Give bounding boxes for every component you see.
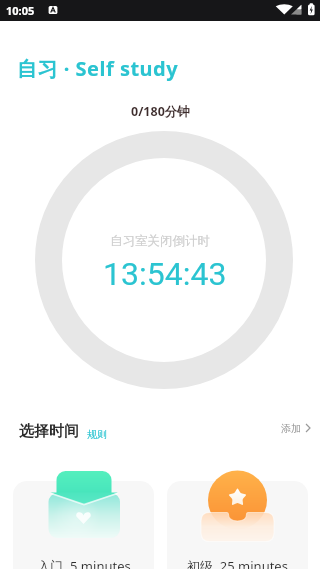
staticText: 13:54:43 <box>103 255 227 293</box>
staticText: 10:05 <box>6 3 35 18</box>
staticText: 选择时间 <box>19 422 79 441</box>
button[interactable]: 规则 <box>87 428 107 441</box>
button[interactable]: 添加 <box>281 422 311 435</box>
button[interactable]: 入门 5 minutes <box>13 481 154 569</box>
staticText: 添加 <box>281 422 301 435</box>
staticText: 自习 · Self study <box>17 55 179 82</box>
staticText: 自习室关闭倒计时 <box>110 233 210 249</box>
staticText: 初级 25 minutes <box>187 557 288 569</box>
staticText: 入门 5 minutes <box>37 557 131 569</box>
button[interactable]: 初级 25 minutes <box>167 481 308 569</box>
staticText: 0/180分钟 <box>131 103 190 120</box>
